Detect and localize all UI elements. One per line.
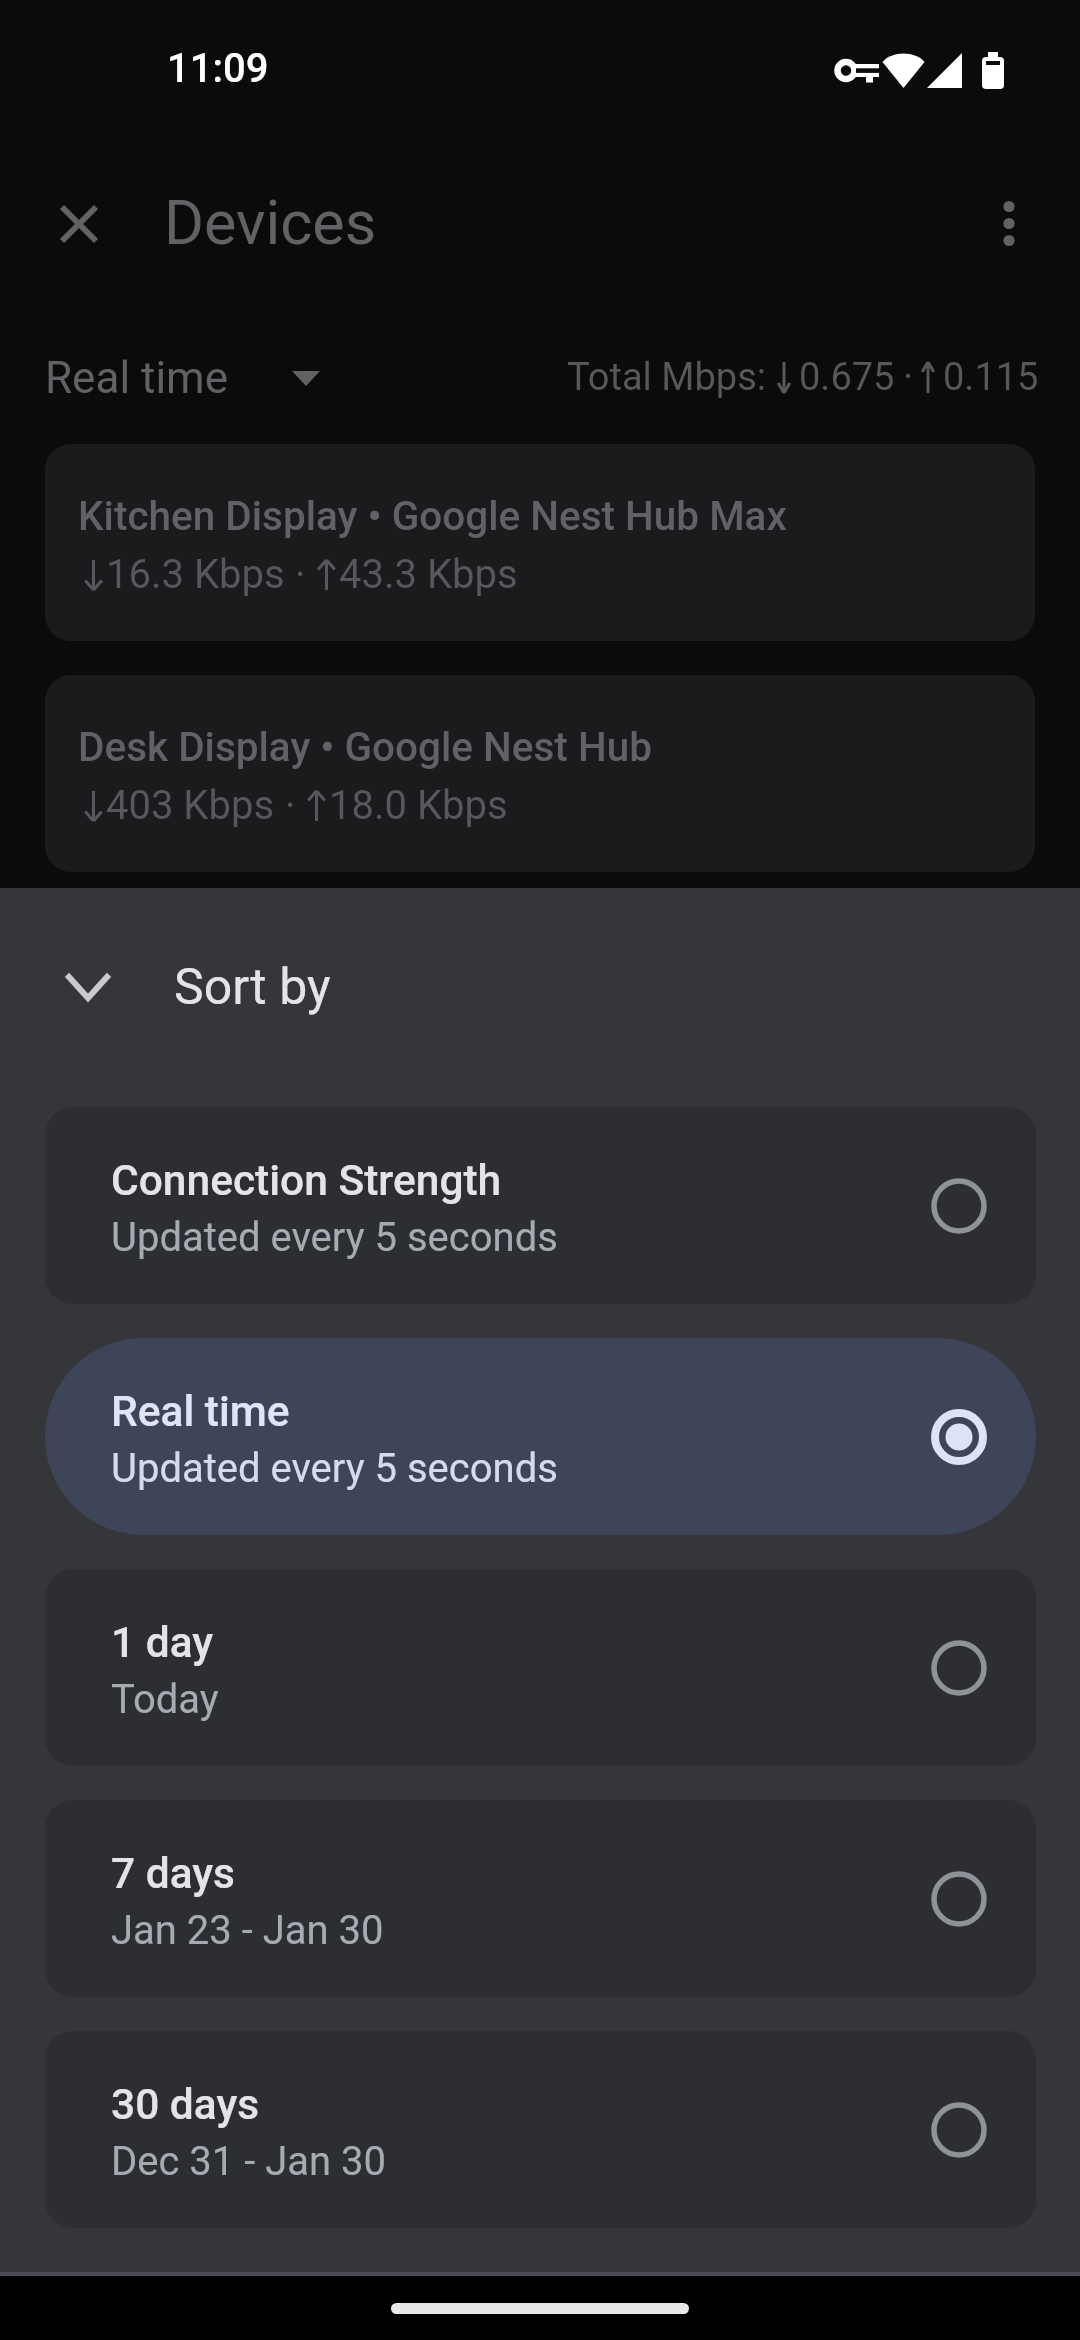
staticText: Real time xyxy=(111,1387,290,1437)
staticText: Jan 23 - Jan 30 xyxy=(111,1907,384,1954)
staticText: 0.675 xyxy=(799,355,895,400)
staticText: 43.3 Kbps xyxy=(339,551,518,598)
button[interactable]: 30 days xyxy=(45,2031,1036,2228)
staticText: 1 day xyxy=(111,1618,214,1668)
staticText: 11:09 xyxy=(167,45,269,92)
staticText: · xyxy=(903,355,913,400)
button[interactable]: Kitchen Display • Google Nest Hub Max xyxy=(45,444,1035,641)
staticText: 403 Kbps xyxy=(106,782,275,829)
button[interactable]: Desk Display • Google Nest Hub xyxy=(45,675,1035,872)
staticText: Total Mbps: xyxy=(567,355,766,400)
button[interactable]: 7 days xyxy=(45,1800,1036,1997)
staticText: Sort by xyxy=(174,958,331,1017)
button[interactable]: More options xyxy=(977,190,1041,254)
staticText: Real time xyxy=(45,352,229,404)
staticText: Updated every 5 seconds xyxy=(111,1214,558,1261)
button[interactable]: 1 day xyxy=(45,1569,1036,1766)
staticText: Kitchen Display • Google Nest Hub Max xyxy=(78,492,787,539)
staticText: Today xyxy=(111,1676,219,1723)
button[interactable]: Close xyxy=(45,190,109,254)
staticText: Updated every 5 seconds xyxy=(111,1445,558,1492)
staticText: 30 days xyxy=(111,2080,260,2130)
staticText: · xyxy=(285,782,296,829)
button[interactable]: Real time xyxy=(45,1338,1036,1535)
button[interactable]: Connection Strength xyxy=(45,1107,1036,1304)
staticText: 0.115 xyxy=(943,355,1039,400)
staticText: Desk Display • Google Nest Hub xyxy=(78,723,652,770)
staticText: 16.3 Kbps xyxy=(106,551,285,598)
staticText: 18.0 Kbps xyxy=(329,782,508,829)
button[interactable]: Sort by xyxy=(42,942,331,1032)
staticText: Devices xyxy=(164,187,377,258)
staticText: · xyxy=(295,551,306,598)
staticText: 7 days xyxy=(111,1849,235,1899)
staticText: Dec 31 - Jan 30 xyxy=(111,2138,386,2185)
button[interactable]: Real time xyxy=(45,346,320,410)
staticText: Connection Strength xyxy=(111,1156,502,1206)
